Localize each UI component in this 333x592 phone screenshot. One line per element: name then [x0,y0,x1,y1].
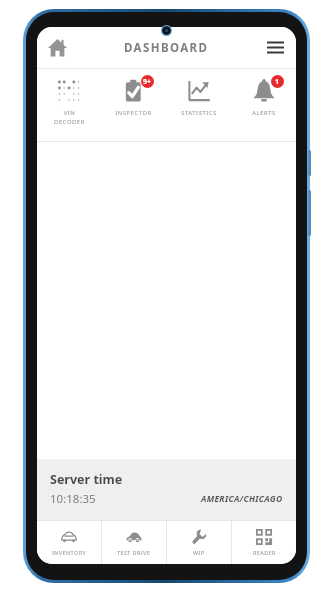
button[interactable]: READER [232,521,296,564]
staticText: 1 [275,77,280,87]
staticText: AMERICA/CHICAGO [201,493,283,505]
staticText: READER [253,549,276,556]
button[interactable]: STATISTICS [166,69,231,141]
button[interactable]: Menu [255,27,296,68]
staticText: ALERTS [252,109,276,117]
button[interactable]: TEST DRIVE [102,521,166,564]
staticText: 10:18:35 [50,491,96,507]
staticText: INSPECTOR [115,109,152,117]
staticText: INVENTORY [52,549,86,556]
button[interactable]: INVENTORY [37,521,101,564]
button[interactable]: VIN DECODER [37,69,101,141]
staticText: 9+ [143,77,152,87]
button[interactable]: 9+ [101,69,166,141]
staticText: WIP [193,549,205,556]
button[interactable]: 1 [231,69,296,141]
staticText: STATISTICS [181,109,217,117]
staticText: DASHBOARD [124,40,209,56]
staticText: TEST DRIVE [117,549,151,556]
staticText: Server time [50,471,123,488]
button[interactable]: Home [37,27,78,68]
button[interactable]: WIP [167,521,231,564]
staticText: VIN DECODER [54,109,85,126]
